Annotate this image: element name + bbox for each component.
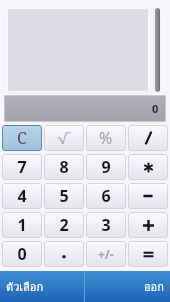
staticText: 1 [17,214,27,236]
staticText: 4 [17,185,27,207]
staticText: 0 [152,101,159,116]
staticText: 8 [59,156,69,178]
button[interactable]: 1 [2,212,42,238]
staticText: +/- [98,246,114,262]
button[interactable]: 7 [2,154,42,180]
staticText: ออก [144,278,164,295]
button[interactable]: +/- [86,241,126,267]
staticText: 0 [17,243,27,265]
button[interactable]: ออก [85,271,170,302]
staticText: 9 [101,156,111,178]
button[interactable] [128,183,168,209]
button[interactable]: 4 [2,183,42,209]
staticText: 6 [101,185,111,207]
staticText: C [17,127,27,149]
button[interactable]: 3 [86,212,126,238]
button[interactable] [44,241,84,267]
staticText: 7 [17,156,27,178]
staticText: 2 [59,214,69,236]
button[interactable]: C [2,125,42,151]
button[interactable] [44,125,84,151]
button[interactable] [128,125,168,151]
button[interactable] [7,8,149,92]
staticText: 3 [101,214,111,236]
button[interactable]: ตัวเลือก [0,271,84,302]
staticText: ตัวเลือก [6,278,44,295]
button[interactable] [128,154,168,180]
button[interactable] [128,241,168,267]
staticText: % [99,127,113,149]
button[interactable]: 0 [2,241,42,267]
button[interactable]: 6 [86,183,126,209]
staticText: 5 [59,185,69,207]
button[interactable]: 2 [44,212,84,238]
other: Scroll [153,8,161,92]
button[interactable]: 0 [4,95,166,122]
button[interactable]: 9 [86,154,126,180]
button[interactable] [128,212,168,238]
button[interactable]: % [86,125,126,151]
button[interactable]: 5 [44,183,84,209]
button[interactable]: 8 [44,154,84,180]
